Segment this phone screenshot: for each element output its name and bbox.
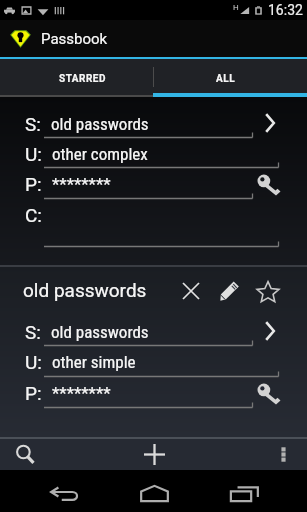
button[interactable]: Back: [42, 473, 86, 512]
button[interactable]: S:: [0, 318, 307, 348]
staticText: 16:32: [268, 2, 303, 18]
staticText: Passbook: [41, 30, 108, 48]
button[interactable]: Open site: [257, 110, 283, 136]
button[interactable]: Show password: [255, 380, 281, 406]
button[interactable]: U:: [0, 140, 307, 170]
staticText: other complex: [52, 144, 148, 164]
staticText: C:: [25, 204, 42, 226]
button[interactable]: S:: [0, 110, 307, 140]
button[interactable]: Home: [132, 473, 176, 512]
button[interactable]: STARRED: [0, 59, 153, 97]
staticText: other simple: [52, 352, 136, 372]
staticText: S:: [25, 113, 41, 135]
staticText: P:: [25, 173, 42, 195]
staticText: ********: [52, 383, 111, 403]
button[interactable]: ALL: [153, 59, 307, 97]
button[interactable]: Edit: [215, 277, 243, 305]
button[interactable]: Star: [254, 277, 282, 305]
button[interactable]: P:: [0, 170, 307, 201]
staticText: H: [233, 3, 239, 12]
button[interactable]: Recent apps: [222, 474, 266, 512]
button[interactable]: U:: [0, 348, 307, 379]
button[interactable]: Show password: [255, 171, 281, 197]
staticText: ALL: [216, 73, 236, 85]
button[interactable]: Search: [4, 439, 46, 470]
staticText: S:: [25, 321, 41, 343]
staticText: old passwords: [23, 279, 147, 301]
button[interactable]: Delete: [177, 277, 205, 305]
staticText: STARRED: [59, 73, 106, 85]
staticText: old passwords: [51, 322, 149, 342]
staticText: U:: [25, 143, 42, 165]
staticText: P:: [25, 382, 42, 404]
staticText: U:: [25, 351, 42, 373]
button[interactable]: P:: [0, 379, 307, 410]
staticText: old passwords: [51, 114, 149, 134]
button[interactable]: Add entry: [130, 439, 178, 470]
button[interactable]: Open site: [257, 318, 283, 344]
button[interactable]: C:: [0, 201, 307, 249]
button[interactable]: More options: [265, 439, 301, 470]
staticText: ********: [52, 174, 111, 194]
